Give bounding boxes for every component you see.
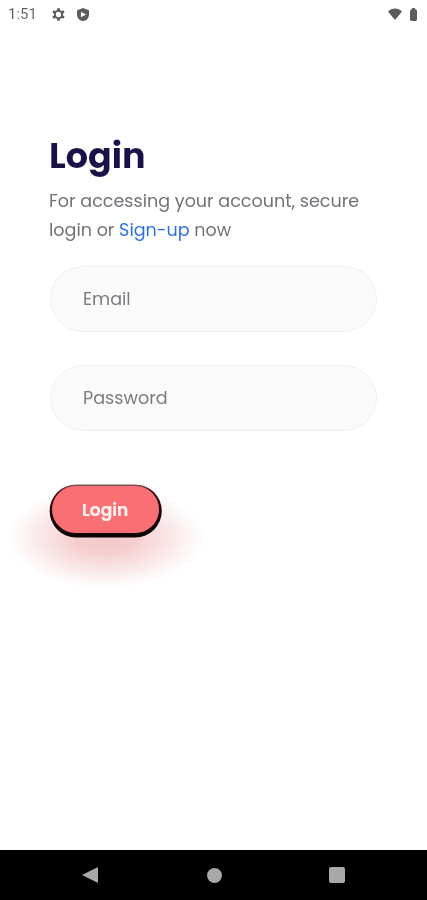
button[interactable]: Recent apps [313,851,361,899]
staticText: Email [83,287,131,312]
staticText: 1:51 [8,5,37,23]
button[interactable]: Home [190,851,238,899]
button[interactable]: Login [52,486,159,533]
staticText: Password [83,386,168,411]
staticText: Login [49,131,146,180]
button[interactable]: Email [50,266,377,332]
button[interactable]: Back [66,851,114,899]
button[interactable]: Password [50,365,377,431]
staticText: Login [82,498,129,522]
staticText: For accessing your account, secure login… [49,189,361,242]
